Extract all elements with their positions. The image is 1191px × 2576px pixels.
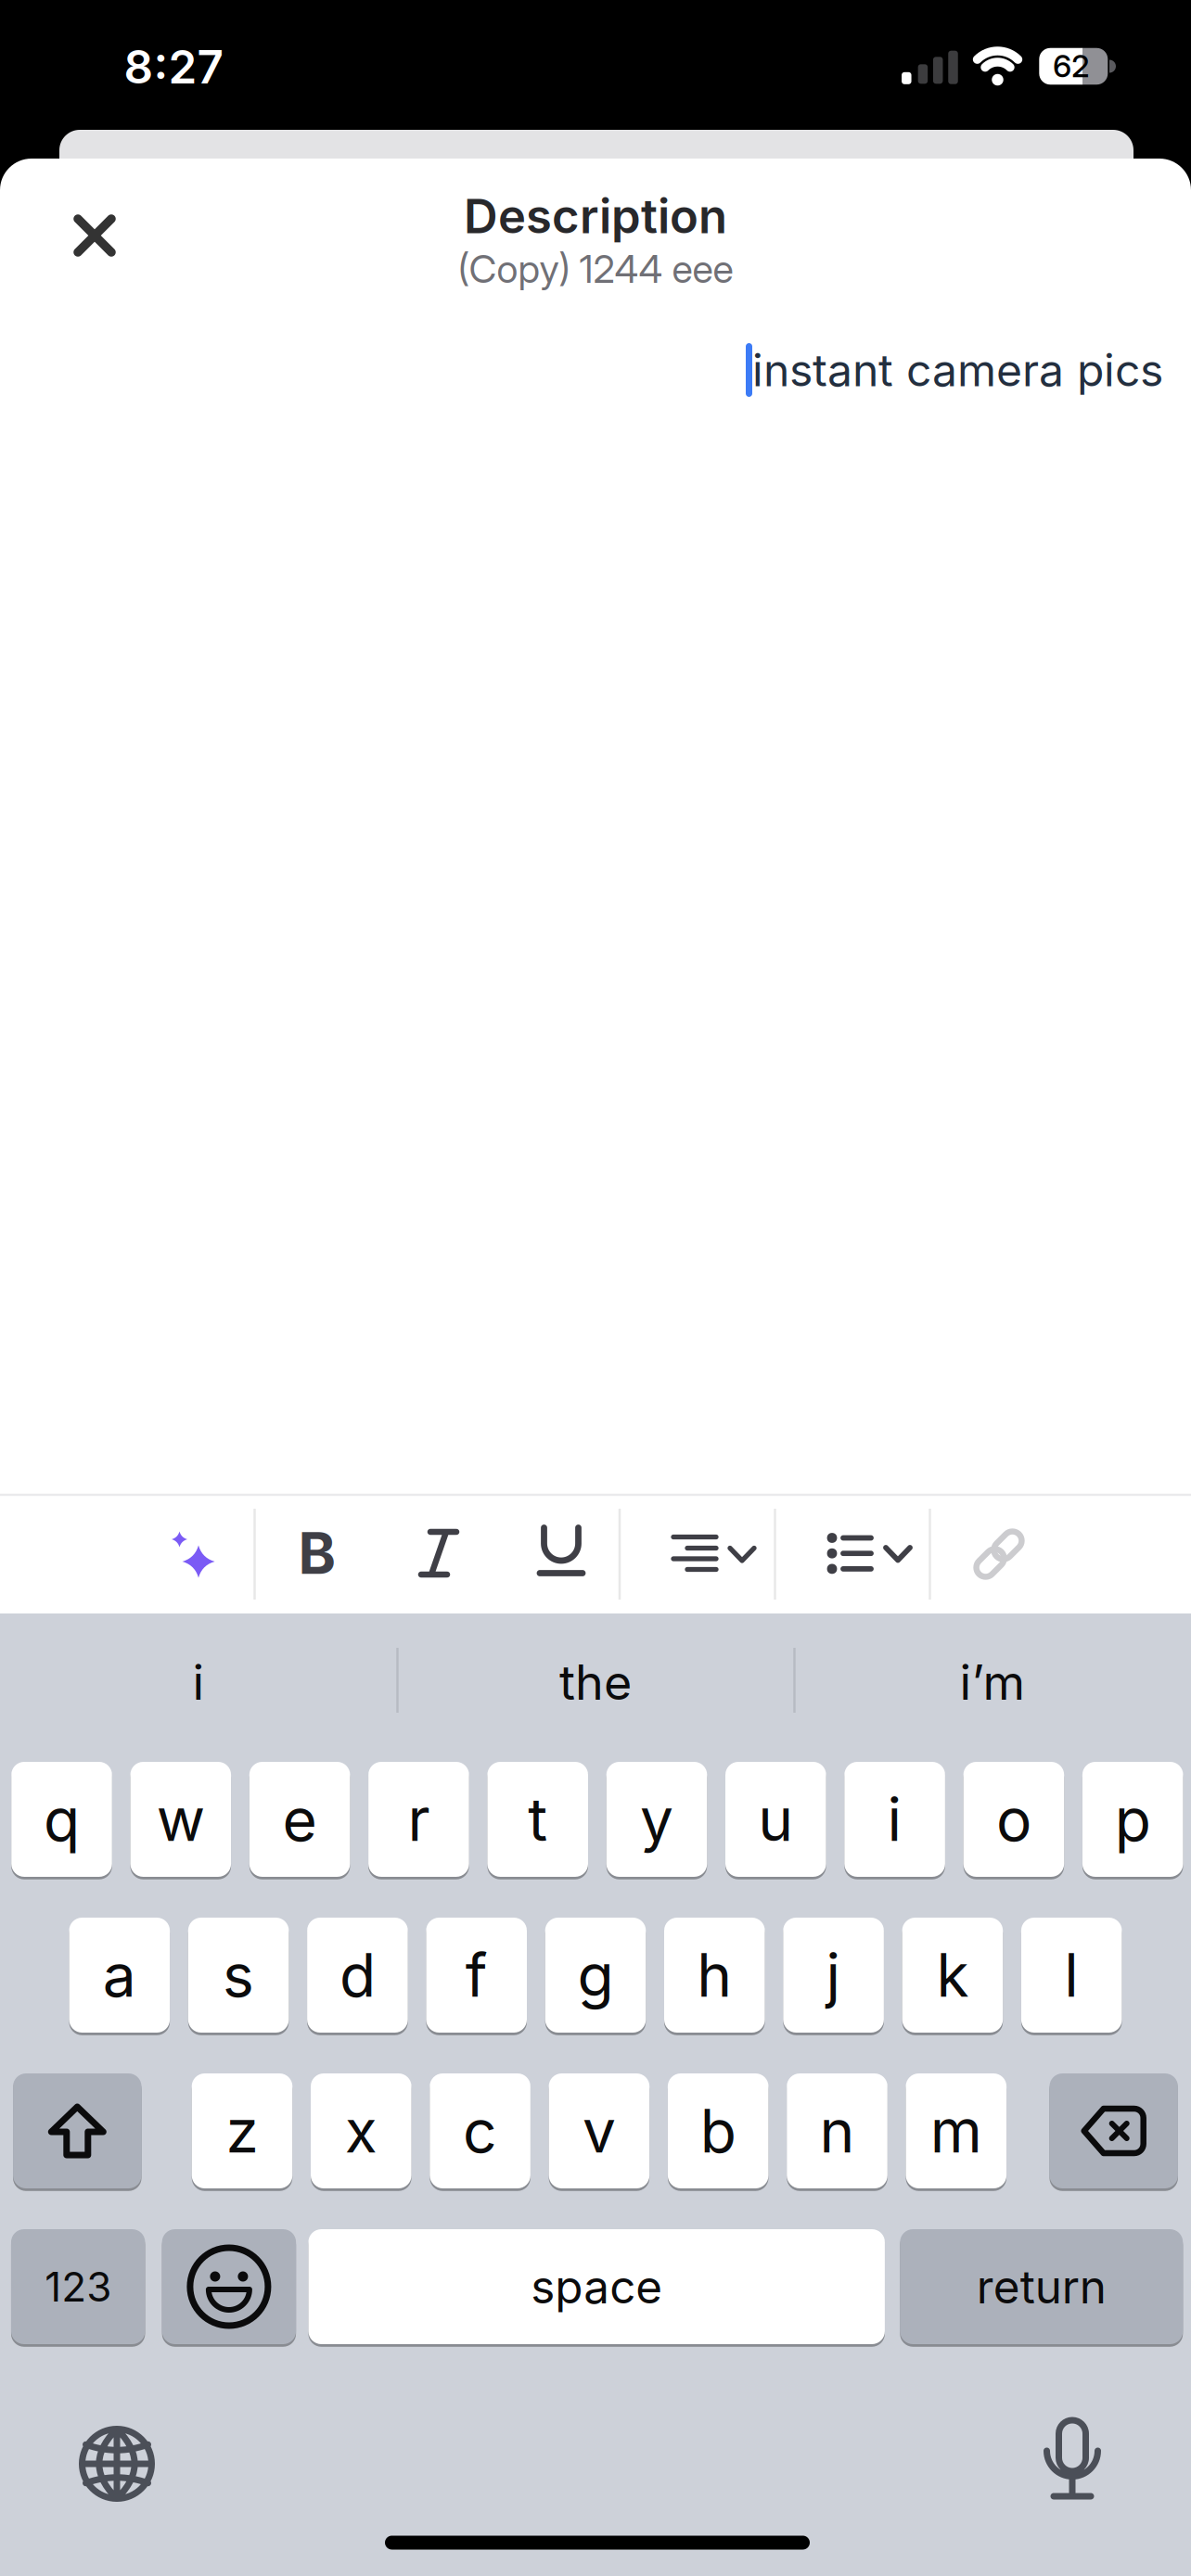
staticText: z	[226, 2096, 258, 2166]
staticText: 8:27	[124, 40, 223, 94]
staticText: b	[700, 2096, 736, 2166]
staticText: instant camera pics	[752, 344, 1163, 396]
button[interactable]: w	[130, 1760, 231, 1879]
staticText: p	[1115, 1784, 1151, 1854]
button[interactable]: f	[426, 1916, 527, 2034]
staticText: s	[223, 1940, 254, 2010]
button[interactable]: Underline	[519, 1509, 603, 1592]
staticText: t	[528, 1784, 547, 1854]
staticText: (Copy) 1244 eee	[458, 246, 733, 292]
button[interactable]: space	[308, 2227, 885, 2346]
staticText: x	[345, 2096, 377, 2166]
staticText: q	[44, 1784, 80, 1854]
button[interactable]: Insert link	[957, 1512, 1041, 1596]
button[interactable]: g	[545, 1916, 646, 2034]
staticText: i	[887, 1784, 902, 1854]
staticText: i’m	[960, 1654, 1025, 1710]
button[interactable]: Text alignment	[663, 1511, 765, 1595]
button[interactable]: k	[902, 1916, 1003, 2034]
button[interactable]: Shift	[13, 2072, 141, 2190]
button[interactable]: i	[4, 1636, 393, 1728]
staticText: i	[192, 1654, 205, 1710]
button[interactable]: Italic	[397, 1511, 480, 1595]
button[interactable]: Bold	[275, 1511, 359, 1595]
button[interactable]: Dictate	[1017, 2404, 1128, 2515]
staticText: o	[996, 1784, 1031, 1854]
button[interactable]: u	[725, 1760, 826, 1879]
staticText: v	[582, 2096, 616, 2166]
button[interactable]: e	[249, 1760, 350, 1879]
button[interactable]: b	[668, 2072, 768, 2190]
button[interactable]: y	[606, 1760, 707, 1879]
button[interactable]: d	[307, 1916, 408, 2034]
staticText: the	[559, 1654, 632, 1710]
staticText: n	[820, 2096, 855, 2166]
button[interactable]: z	[192, 2072, 292, 2190]
button[interactable]: Next keyboard	[61, 2408, 173, 2519]
button[interactable]: Close	[53, 194, 136, 277]
button[interactable]: c	[430, 2072, 530, 2190]
button[interactable]: p	[1082, 1760, 1183, 1879]
button[interactable]: q	[11, 1760, 112, 1879]
staticText: e	[283, 1784, 317, 1854]
staticText: c	[463, 2096, 497, 2166]
button[interactable]: x	[311, 2072, 411, 2190]
button[interactable]: return	[900, 2227, 1183, 2346]
staticText: r	[408, 1784, 430, 1854]
button[interactable]: t	[487, 1760, 588, 1879]
button[interactable]: j	[783, 1916, 884, 2034]
button[interactable]: h	[664, 1916, 765, 2034]
staticText: Description	[464, 188, 727, 244]
staticText: w	[157, 1784, 205, 1854]
staticText: k	[936, 1940, 969, 2010]
staticText: f	[465, 1940, 488, 2010]
button[interactable]: o	[963, 1760, 1064, 1879]
button[interactable]: l	[1021, 1916, 1122, 2034]
button[interactable]: the	[401, 1636, 790, 1728]
staticText: 62	[1053, 48, 1090, 84]
button[interactable]: Delete	[1050, 2072, 1178, 2190]
button[interactable]: v	[549, 2072, 649, 2190]
button[interactable]: s	[188, 1916, 289, 2034]
button[interactable]: i	[844, 1760, 945, 1879]
staticText: a	[103, 1940, 136, 2010]
staticText: 123	[45, 2263, 111, 2311]
staticText: B	[298, 1520, 336, 1587]
button[interactable]: List format	[817, 1511, 921, 1595]
button[interactable]: i’m	[798, 1636, 1187, 1728]
button[interactable]: m	[906, 2072, 1007, 2190]
button[interactable]: 123	[11, 2227, 145, 2346]
staticText: g	[577, 1940, 614, 2010]
button[interactable]: a	[69, 1916, 170, 2034]
staticText: d	[339, 1940, 376, 2010]
staticText: y	[640, 1784, 673, 1854]
staticText: m	[930, 2096, 982, 2166]
staticText: return	[977, 2260, 1106, 2314]
staticText: h	[697, 1940, 732, 2010]
staticText: j	[826, 1940, 841, 2010]
button[interactable]: r	[368, 1760, 469, 1879]
staticText: space	[531, 2260, 662, 2314]
button[interactable]: AI assist	[153, 1513, 237, 1597]
button[interactable]: Emoji	[162, 2227, 296, 2346]
button[interactable]: n	[787, 2072, 887, 2190]
staticText: l	[1064, 1940, 1079, 2010]
staticText: u	[758, 1784, 793, 1854]
